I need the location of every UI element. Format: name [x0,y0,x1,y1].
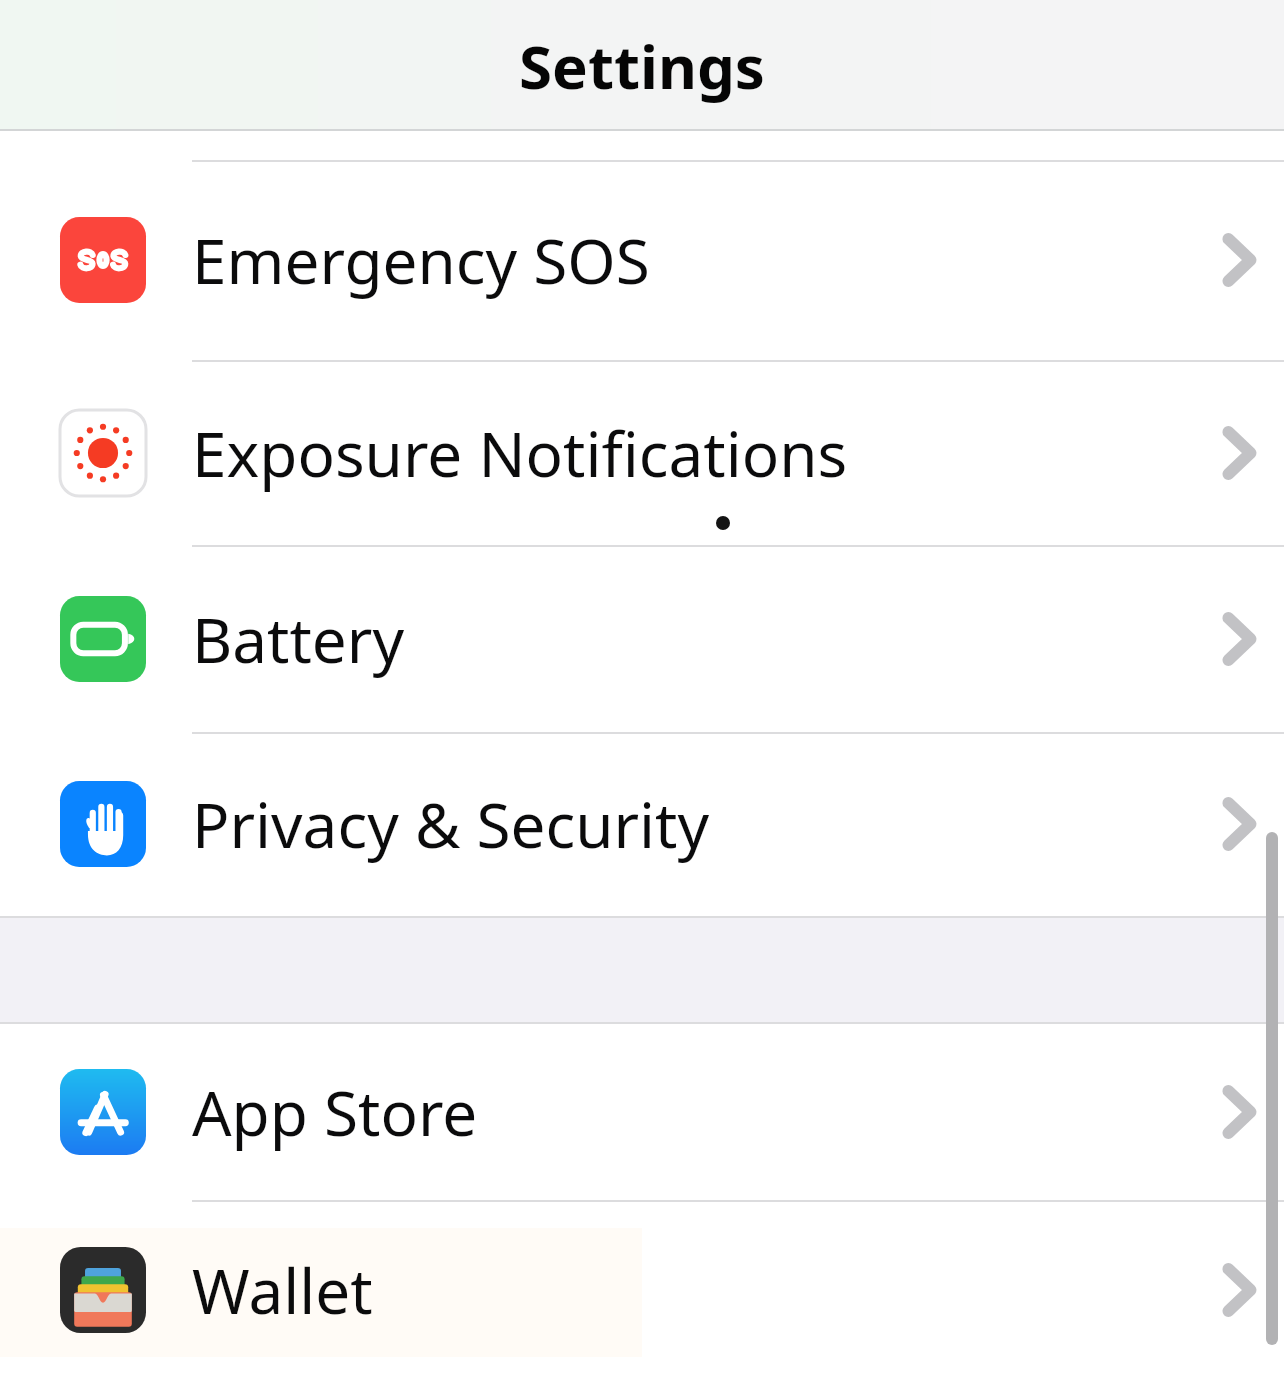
staticText: Exposure Notifications [192,411,1206,495]
button[interactable]: Battery [0,545,1284,732]
staticText: Privacy & Security [192,782,1206,866]
staticText: App Store [192,1070,1206,1154]
staticText: Battery [192,597,1206,681]
staticText: Emergency SOS [192,218,1206,302]
button[interactable]: Privacy & Security [0,732,1284,916]
button[interactable]: Exposure Notifications [0,360,1284,545]
button[interactable]: Emergency SOS [0,160,1284,360]
staticText: Wallet [192,1248,1206,1332]
button[interactable]: Wallet [0,1200,1284,1380]
button[interactable]: App Store [0,1024,1284,1200]
staticText: Settings [0,25,1284,107]
